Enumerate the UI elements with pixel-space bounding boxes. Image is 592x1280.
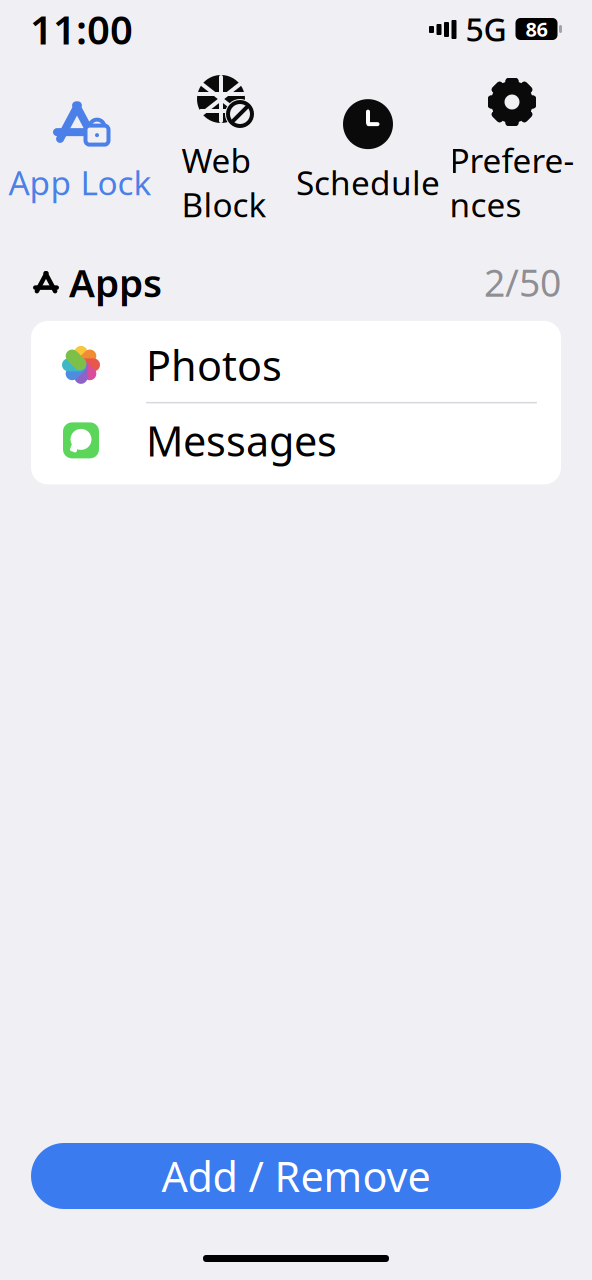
button[interactable]: Schedule (296, 86, 440, 214)
button[interactable]: App Lock (8, 86, 152, 214)
button[interactable]: Messages (31, 403, 561, 477)
button[interactable]: Web Block (152, 64, 296, 236)
staticText: 86 (525, 16, 547, 42)
staticText: Photos (146, 337, 282, 392)
staticText: Schedule (296, 160, 440, 204)
staticText: Preferences (449, 138, 574, 226)
staticText: Messages (146, 413, 337, 468)
staticText: 5G (465, 8, 506, 50)
button[interactable]: Photos (31, 328, 561, 402)
staticText: App Lock (8, 160, 151, 204)
staticText: 11:00 (30, 2, 133, 55)
staticText: Web Block (181, 138, 266, 226)
button[interactable]: Add / Remove (31, 1143, 561, 1209)
staticText: 2/50 (484, 257, 561, 307)
staticText: Apps (69, 256, 162, 308)
staticText: Add / Remove (161, 1149, 430, 1203)
button[interactable]: Preferences (440, 64, 584, 236)
